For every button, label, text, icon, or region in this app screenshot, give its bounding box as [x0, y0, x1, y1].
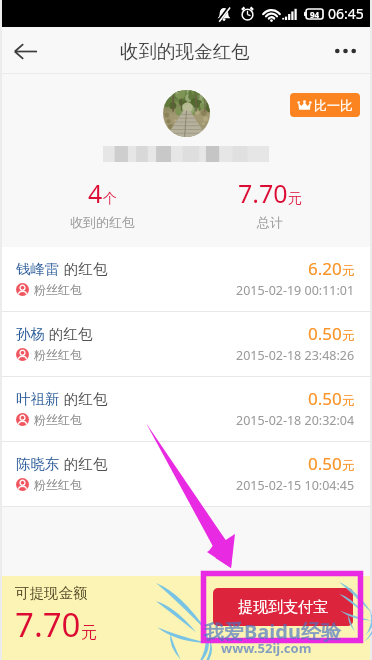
staticText: 粉丝红包: [34, 282, 82, 297]
button[interactable]: 叶祖新: [0, 377, 372, 441]
button[interactable]: 提现到支付宝: [213, 588, 353, 626]
staticText: 0.50: [308, 452, 342, 475]
staticText: 的红包: [45, 323, 93, 343]
button[interactable]: 陈晓东: [0, 442, 372, 506]
staticText: 收到的红包: [70, 214, 135, 230]
button[interactable]: 比一比: [290, 93, 360, 117]
staticText: 元: [342, 328, 355, 344]
button[interactable]: Back: [2, 28, 48, 74]
staticText: 元: [81, 623, 97, 643]
staticText: 比一比: [314, 97, 353, 113]
staticText: 钱峰雷: [16, 260, 60, 278]
button[interactable]: 钱峰雷: [0, 247, 372, 311]
staticText: 的红包: [60, 453, 108, 473]
staticText: 6.20: [308, 257, 342, 280]
staticText: 元: [342, 458, 355, 474]
staticText: 0.50: [308, 322, 342, 345]
button[interactable]: More options: [322, 28, 368, 74]
button[interactable]: 孙杨: [0, 312, 372, 376]
staticText: www.52ij.com: [221, 639, 312, 657]
staticText: 94: [310, 9, 320, 19]
staticText: 粉丝红包: [34, 347, 82, 362]
staticText: 7.70: [238, 176, 288, 210]
staticText: 粉丝红包: [34, 412, 82, 427]
staticText: 个: [103, 190, 117, 208]
staticText: 06:45: [328, 4, 364, 23]
staticText: 叶祖新: [16, 390, 60, 408]
staticText: 元: [342, 393, 355, 409]
staticText: 提现到支付宝: [238, 598, 328, 617]
staticText: 陈晓东: [16, 455, 60, 473]
staticText: 元: [288, 190, 302, 208]
staticText: 2015-02-19 00:11:01: [236, 282, 355, 299]
staticText: 2015-02-18 20:32:04: [236, 412, 355, 429]
staticText: 2015-02-15 10:04:45: [236, 477, 355, 494]
staticText: 4: [88, 176, 103, 210]
staticText: 粉丝红包: [34, 477, 82, 492]
staticText: 收到的现金红包: [120, 40, 250, 63]
staticText: 0.50: [308, 387, 342, 410]
staticText: 2015-02-18 23:48:26: [236, 347, 355, 364]
staticText: 我爱Baidu经验: [204, 618, 341, 645]
staticText: 的红包: [60, 388, 108, 408]
staticText: 总计: [257, 214, 283, 230]
staticText: 可提现金额: [15, 584, 88, 602]
staticText: 7.70: [15, 602, 81, 647]
staticText: 元: [342, 263, 355, 279]
staticText: 孙杨: [16, 325, 45, 343]
staticText: 的红包: [60, 258, 108, 278]
